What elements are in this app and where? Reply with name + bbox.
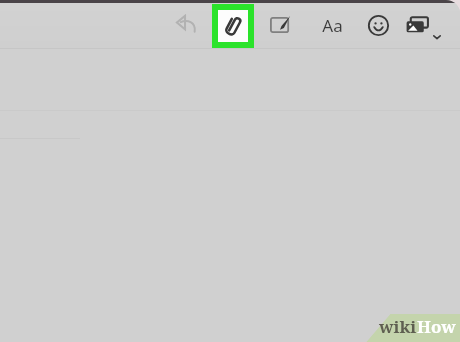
button[interactable]: Photos	[404, 7, 448, 43]
button[interactable]: Aa	[312, 7, 352, 43]
staticText: How	[417, 315, 456, 338]
staticText: wiki	[379, 315, 417, 338]
button[interactable]: Reply	[168, 6, 204, 42]
button[interactable]: Emoji	[360, 7, 396, 43]
button[interactable]: Markup	[263, 7, 299, 43]
staticText: Aa	[322, 14, 343, 37]
button[interactable]: Attach file	[212, 4, 254, 48]
